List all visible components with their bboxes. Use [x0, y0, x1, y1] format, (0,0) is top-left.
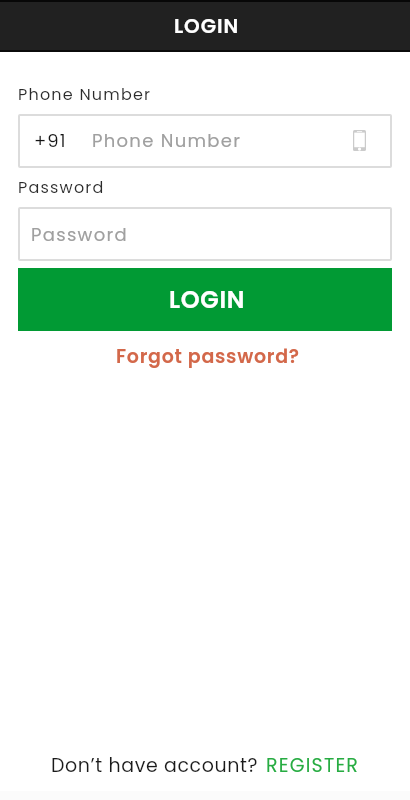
staticText: LOGIN — [169, 283, 246, 317]
button[interactable]: REGISTER — [266, 752, 360, 779]
staticText: Phone Number — [18, 83, 152, 105]
staticText: LOGIN — [174, 12, 239, 40]
staticText: Phone Number — [92, 128, 242, 153]
staticText: Password — [18, 176, 105, 198]
button[interactable]: +91 — [18, 114, 392, 168]
staticText: Don’t have account? — [51, 752, 264, 779]
button[interactable]: Password — [18, 207, 392, 261]
button[interactable]: Forgot password? — [101, 341, 310, 372]
staticText: +91 — [34, 128, 67, 153]
other: Phone number — [353, 130, 366, 151]
button[interactable]: LOGIN — [18, 268, 392, 331]
staticText: Password — [31, 222, 128, 247]
